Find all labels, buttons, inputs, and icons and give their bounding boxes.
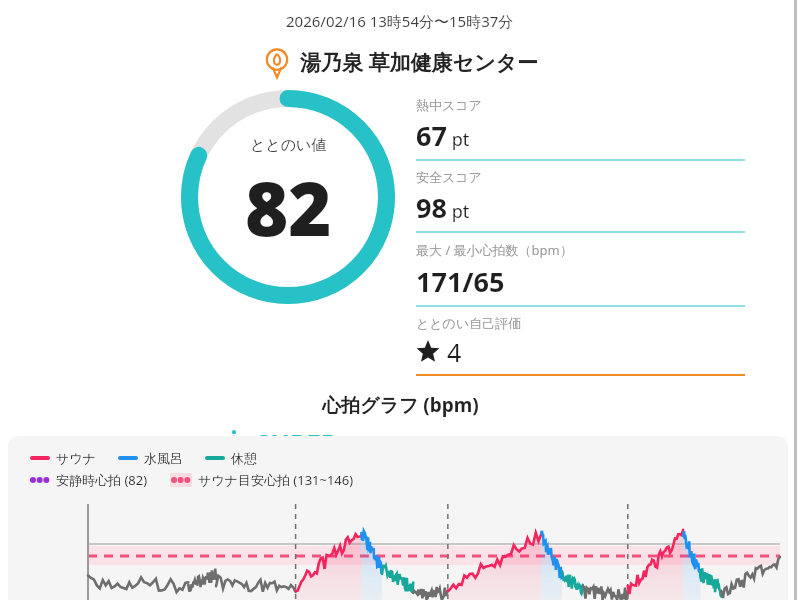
staticText: 最大 / 最小心拍数（bpm） — [416, 241, 573, 259]
button[interactable]: 安全スコア — [416, 161, 745, 233]
staticText: ととのい自己評価 — [416, 315, 522, 331]
button[interactable]: ととのい自己評価 — [416, 307, 745, 376]
button[interactable]: SUPER — [219, 423, 359, 463]
button[interactable]: サウナ — [8, 436, 788, 600]
staticText: pt — [447, 199, 470, 224]
staticText: ととのい値 — [250, 136, 327, 155]
staticText: 2026/02/16 13時54分〜15時37分 — [286, 11, 514, 31]
staticText: サウナ — [56, 450, 96, 466]
staticText: 安全スコア — [416, 169, 482, 185]
staticText: pt — [447, 127, 470, 152]
button[interactable]: 湯乃泉 草加健康センター — [0, 47, 800, 77]
staticText: 水風呂 — [144, 450, 183, 466]
staticText: 67 — [416, 117, 447, 154]
staticText: 心拍グラフ (bpm) — [322, 392, 479, 418]
staticText: 98 — [416, 189, 447, 226]
staticText: 休憩 — [231, 450, 257, 466]
staticText: 熱中スコア — [416, 97, 482, 113]
staticText: 湯乃泉 草加健康センター — [300, 48, 538, 77]
button[interactable]: 最大 / 最小心拍数（bpm） — [416, 233, 745, 307]
staticText: 171/65 — [416, 263, 505, 300]
staticText: SUPER — [256, 426, 338, 461]
staticText: 4 — [447, 335, 462, 369]
staticText: 82 — [245, 157, 332, 258]
staticText: 安静時心拍 (82) — [56, 471, 148, 489]
button[interactable]: 熱中スコア — [416, 89, 745, 161]
staticText: サウナ目安心拍 (131~146) — [198, 471, 354, 489]
